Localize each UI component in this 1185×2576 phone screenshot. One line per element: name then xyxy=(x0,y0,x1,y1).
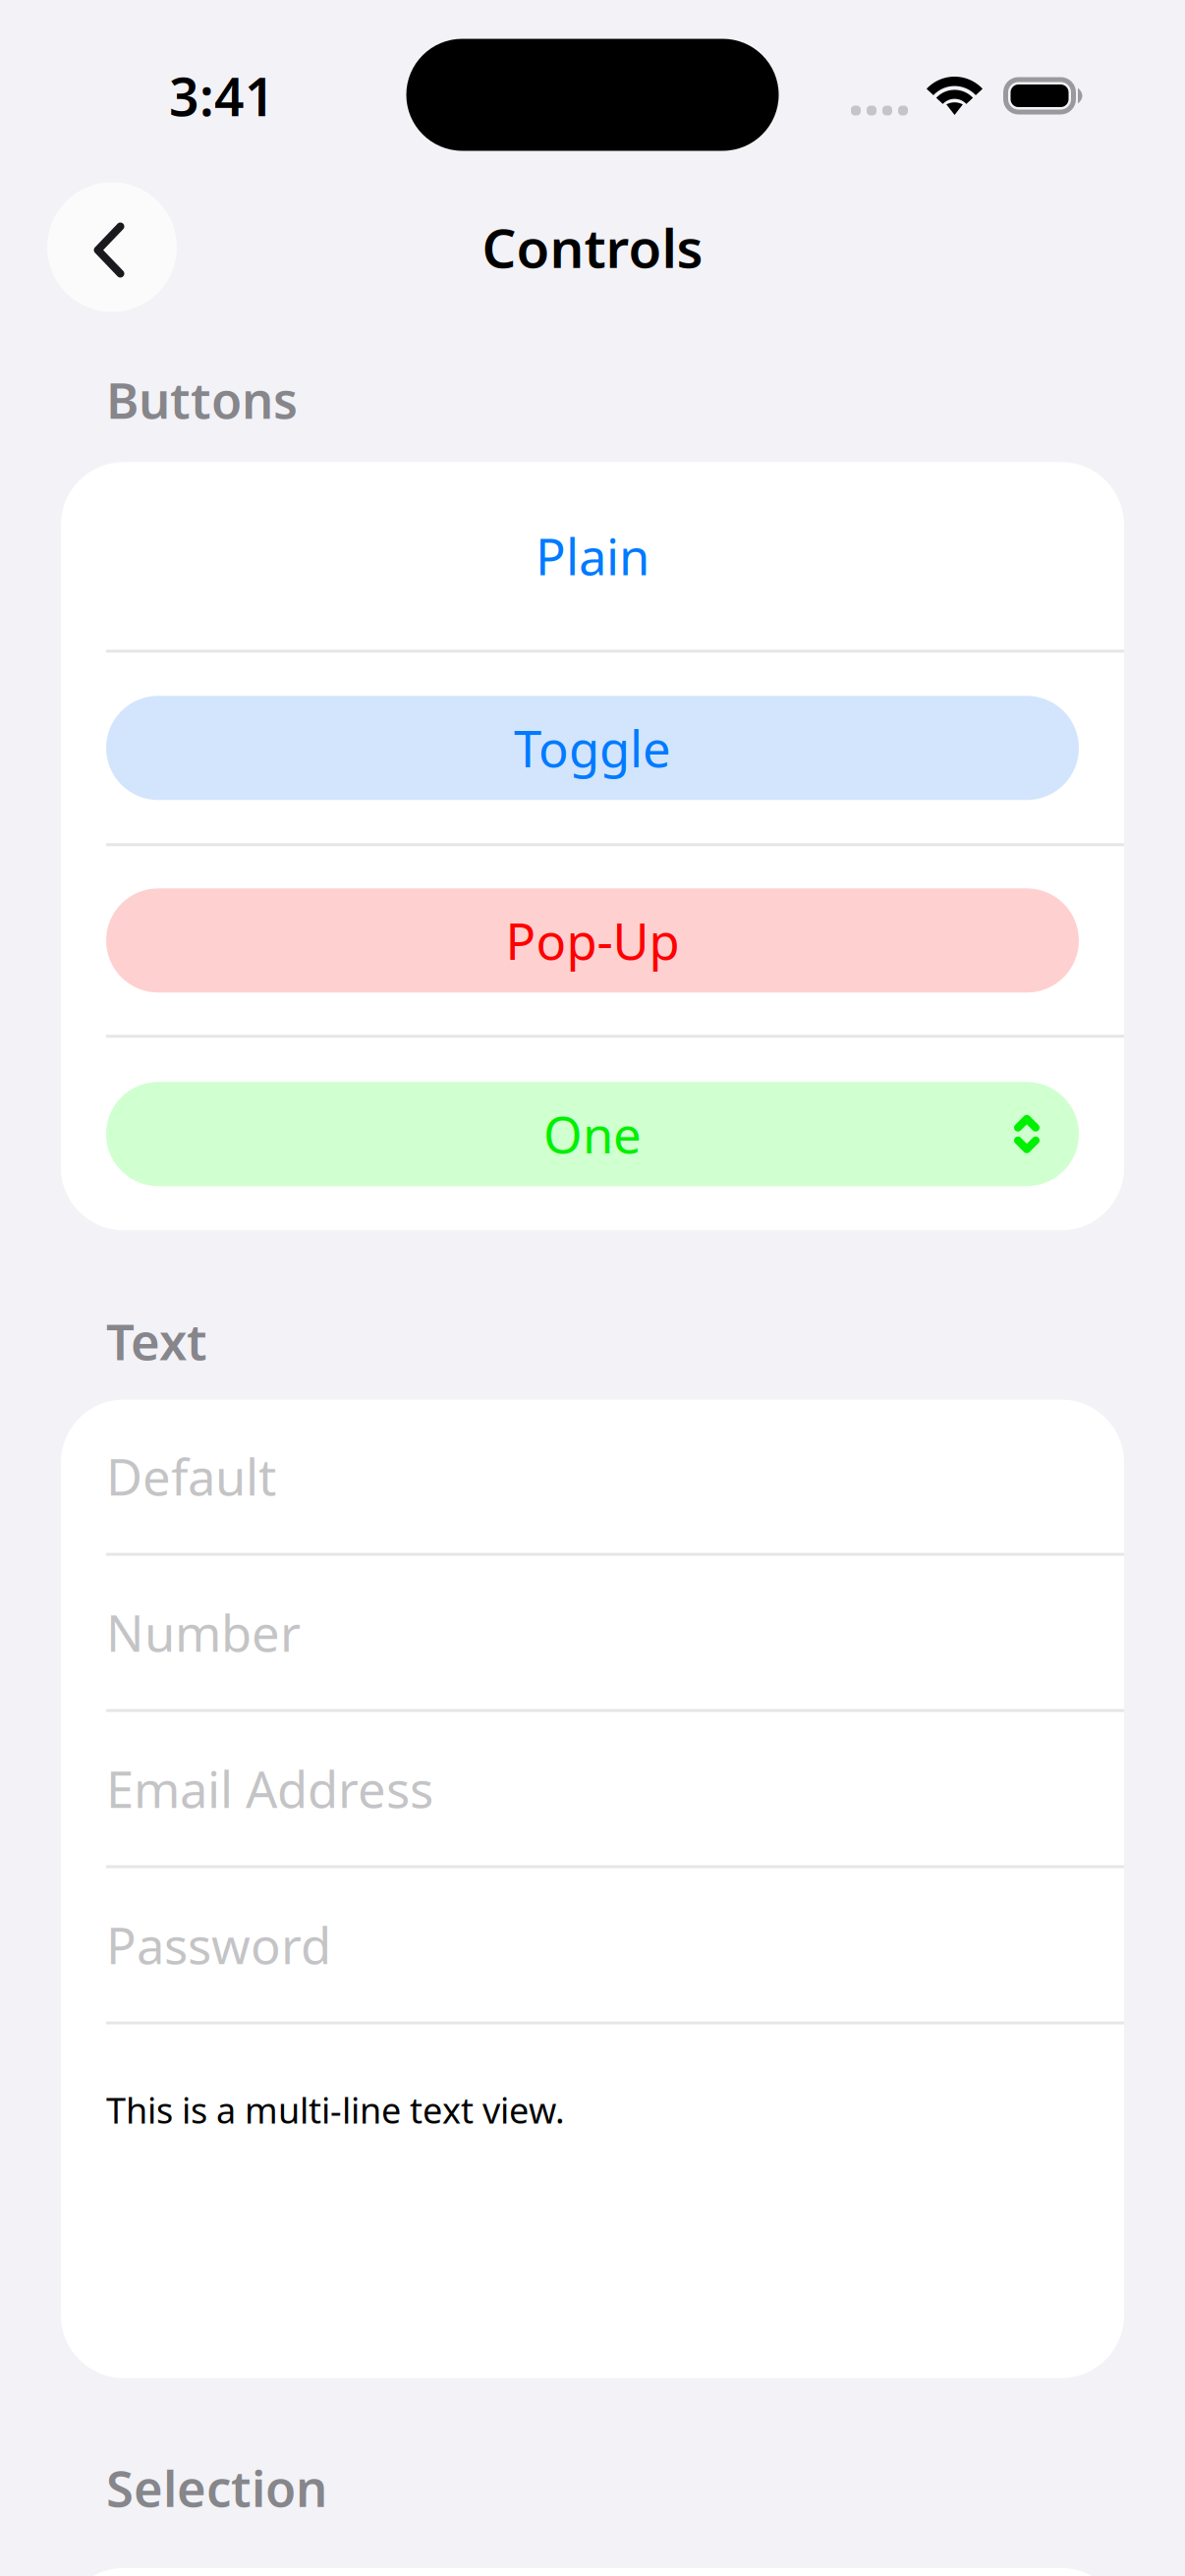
staticText: Default xyxy=(106,1443,276,1509)
staticText: One xyxy=(543,1101,642,1167)
button[interactable]: Number xyxy=(61,1556,1124,1709)
button[interactable]: Default xyxy=(61,1400,1124,1553)
button[interactable]: Plain xyxy=(61,462,1124,650)
button[interactable] xyxy=(61,2568,1124,2576)
button[interactable]: Password xyxy=(61,1868,1124,2022)
staticText: Text xyxy=(106,1308,207,1374)
staticText: Buttons xyxy=(106,366,298,433)
button[interactable]: Email Address xyxy=(61,1712,1124,1865)
button[interactable]: One xyxy=(61,1038,1124,1230)
staticText: Email Address xyxy=(106,1756,433,1822)
button[interactable]: Toggle xyxy=(61,653,1124,843)
staticText: This is a multi-line text view. xyxy=(106,2086,565,2133)
button[interactable]: Back xyxy=(47,182,177,312)
staticText: Password xyxy=(106,1912,331,1978)
staticText: Pop-Up xyxy=(506,907,679,974)
staticText: Selection xyxy=(106,2455,327,2521)
staticText: Controls xyxy=(482,211,703,283)
button[interactable]: Pop-Up xyxy=(61,846,1124,1035)
staticText: Toggle xyxy=(514,715,671,781)
staticText: Number xyxy=(106,1599,301,1665)
staticText: Plain xyxy=(536,523,649,589)
staticText: 3:41 xyxy=(169,61,275,131)
